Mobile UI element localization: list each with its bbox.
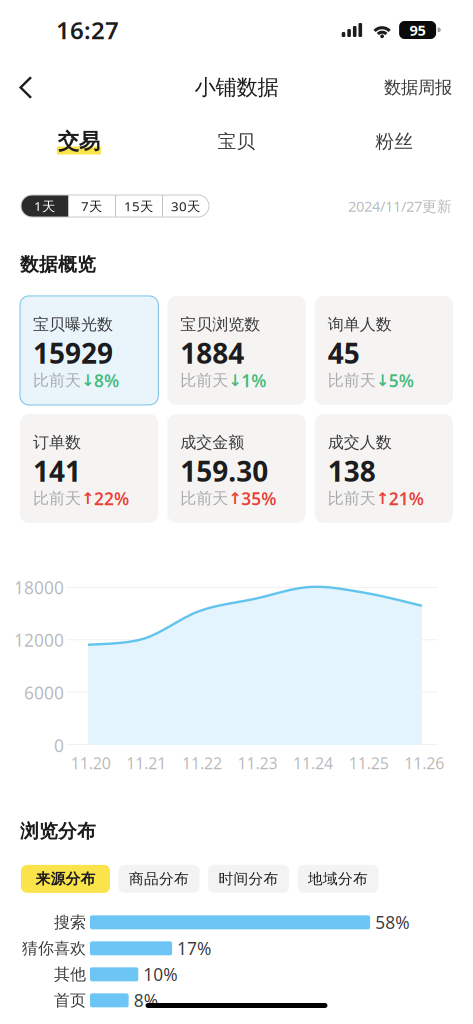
staticText: 2024/11/27更新 (348, 196, 452, 216)
button[interactable]: 时间分布 (208, 865, 289, 893)
staticText: 21% (389, 487, 424, 510)
staticText: 宝贝浏览数 (180, 315, 260, 334)
button[interactable]: 1天 (21, 195, 68, 217)
staticText: ↑ (228, 489, 241, 507)
staticText: 数据概览 (20, 253, 96, 276)
staticText: 时间分布 (218, 870, 278, 888)
staticText: 141 (33, 452, 81, 489)
staticText: 比前天 (33, 489, 81, 508)
staticText: 比前天 (328, 371, 376, 390)
staticText: 22% (94, 487, 129, 510)
button[interactable]: 询单人数 (315, 296, 453, 405)
staticText: 0 (54, 734, 64, 757)
staticText: 比前天 (180, 371, 228, 390)
button[interactable]: 订单数 (20, 414, 158, 523)
staticText: 15天 (124, 197, 153, 215)
button[interactable]: 宝贝 (158, 115, 315, 168)
staticText: 地域分布 (308, 870, 368, 888)
button[interactable]: 地域分布 (297, 865, 378, 893)
staticText: 比前天 (33, 371, 81, 390)
button[interactable]: 来源分布 (21, 865, 110, 893)
staticText: 11.20 (71, 752, 111, 773)
staticText: 16:27 (56, 14, 119, 46)
button[interactable]: 成交人数 (315, 414, 453, 523)
button[interactable]: Back (0, 65, 50, 110)
button[interactable]: 7天 (68, 195, 115, 217)
staticText: 95 (410, 20, 426, 40)
button[interactable]: 粉丝 (315, 115, 473, 168)
staticText: 1天 (34, 197, 55, 215)
staticText: 1% (241, 369, 266, 392)
staticText: 11.26 (404, 752, 444, 773)
button[interactable]: 商品分布 (118, 865, 199, 893)
staticText: 30天 (171, 197, 200, 215)
staticText: 45 (328, 334, 360, 371)
staticText: ↓ (376, 371, 389, 389)
staticText: 成交金额 (180, 433, 244, 452)
staticText: 浏览分布 (20, 820, 96, 843)
button[interactable]: 15天 (115, 195, 162, 217)
staticText: 6000 (24, 681, 64, 704)
staticText: 17% (177, 937, 211, 960)
staticText: 宝贝 (217, 130, 255, 153)
staticText: 比前天 (180, 489, 228, 508)
staticText: ↓ (81, 371, 94, 389)
staticText: 15929 (33, 334, 113, 371)
staticText: 7天 (81, 197, 102, 215)
staticText: 11.22 (182, 752, 222, 773)
staticText: ↑ (81, 489, 94, 507)
staticText: 搜索 (54, 912, 86, 932)
staticText: 1884 (180, 334, 244, 371)
button[interactable]: 交易 (0, 115, 158, 168)
staticText: ↓ (228, 371, 241, 389)
button[interactable]: 成交金额 (167, 414, 306, 523)
staticText: 数据周报 (384, 77, 452, 98)
staticText: 小铺数据 (194, 74, 278, 101)
staticText: 猜你喜欢 (22, 938, 86, 958)
staticText: 12000 (14, 629, 64, 652)
button[interactable]: 30天 (162, 195, 209, 217)
staticText: ↑ (376, 489, 389, 507)
staticText: 粉丝 (375, 130, 413, 153)
staticText: 商品分布 (129, 870, 189, 888)
staticText: 订单数 (33, 433, 81, 452)
staticText: 11.24 (293, 752, 333, 773)
staticText: 询单人数 (328, 315, 392, 334)
staticText: 5% (389, 369, 414, 392)
staticText: 11.21 (126, 752, 166, 773)
staticText: 交易 (58, 128, 100, 155)
staticText: 58% (375, 911, 409, 934)
staticText: 138 (328, 452, 376, 489)
staticText: 10% (143, 963, 177, 986)
staticText: 首页 (54, 990, 86, 1010)
staticText: 11.23 (237, 752, 277, 773)
button[interactable]: 宝贝浏览数 (167, 296, 306, 405)
button[interactable]: 数据周报 (368, 65, 473, 110)
staticText: 8% (94, 369, 119, 392)
staticText: 来源分布 (35, 870, 95, 888)
staticText: 11.25 (349, 752, 389, 773)
staticText: 8% (134, 989, 158, 1012)
staticText: 159.30 (180, 452, 268, 489)
staticText: 宝贝曝光数 (33, 315, 113, 334)
staticText: 成交人数 (328, 433, 392, 452)
button[interactable]: 宝贝曝光数 (20, 296, 158, 405)
staticText: 比前天 (328, 489, 376, 508)
staticText: 35% (241, 487, 276, 510)
staticText: 其他 (54, 964, 86, 984)
staticText: 18000 (14, 576, 64, 599)
